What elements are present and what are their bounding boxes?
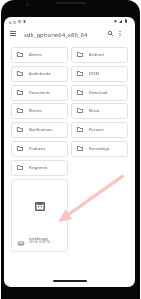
staticText: DCIM: [89, 71, 100, 76]
staticText: Recordings: [89, 146, 110, 151]
staticText: Movies: [29, 108, 42, 113]
button[interactable]: Android: [71, 47, 128, 63]
button[interactable]: Download: [71, 85, 128, 101]
staticText: Podcasts: [29, 146, 46, 151]
staticText: Download: [89, 90, 108, 95]
button[interactable]: Documents: [11, 85, 68, 101]
staticText: Notifications: [29, 127, 53, 132]
button[interactable]: Pictures: [71, 122, 128, 138]
button[interactable]: More options: [114, 27, 126, 39]
button[interactable]: Music: [71, 103, 128, 119]
button[interactable]: Podcasts: [11, 141, 68, 157]
button[interactable]: Recordings: [71, 141, 128, 157]
button[interactable]: Notifications: [11, 122, 68, 138]
staticText: Pictures: [89, 127, 104, 132]
staticText: 6:15: [9, 20, 16, 25]
button[interactable]: Navigation menu: [7, 27, 19, 39]
staticText: Documents: [29, 90, 50, 95]
staticText: Audiobooks: [29, 71, 51, 76]
staticText: Ringtones: [29, 165, 48, 170]
staticText: installer.apk: [29, 236, 48, 241]
button[interactable]: DCIM: [71, 66, 128, 82]
button[interactable]: Movies: [11, 103, 68, 119]
staticText: sdk_gphone64_x86_64: [24, 31, 88, 39]
staticText: Music: [89, 108, 100, 113]
staticText: Android: [89, 52, 104, 57]
button[interactable]: Alarms: [11, 47, 68, 63]
button[interactable]: installer.apk: [11, 179, 68, 252]
button[interactable]: Audiobooks: [11, 66, 68, 82]
staticText: 235 kB 8:06 PM: [29, 240, 50, 244]
button[interactable]: Search: [104, 27, 116, 39]
staticText: Alarms: [29, 52, 42, 57]
button[interactable]: Ringtones: [11, 160, 68, 176]
